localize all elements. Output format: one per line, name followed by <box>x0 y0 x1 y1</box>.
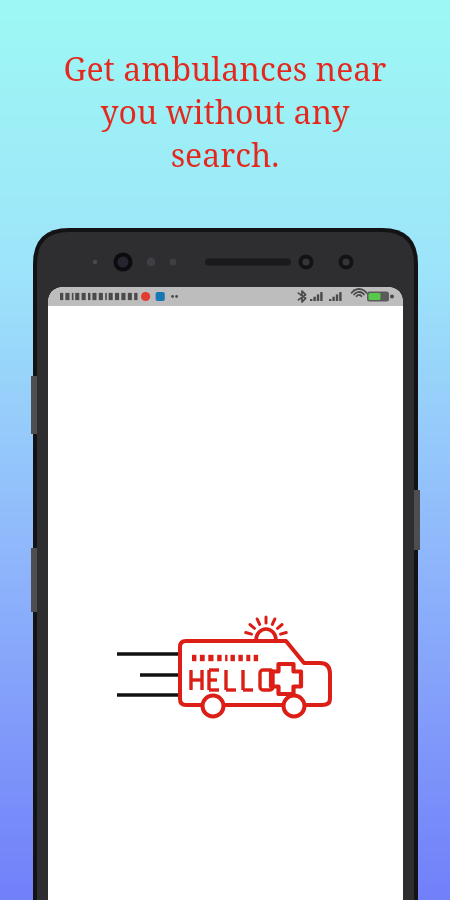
button[interactable]: Hello Ambulance logo <box>112 608 340 718</box>
staticText: Get ambulances near you without any sear… <box>10 47 440 176</box>
